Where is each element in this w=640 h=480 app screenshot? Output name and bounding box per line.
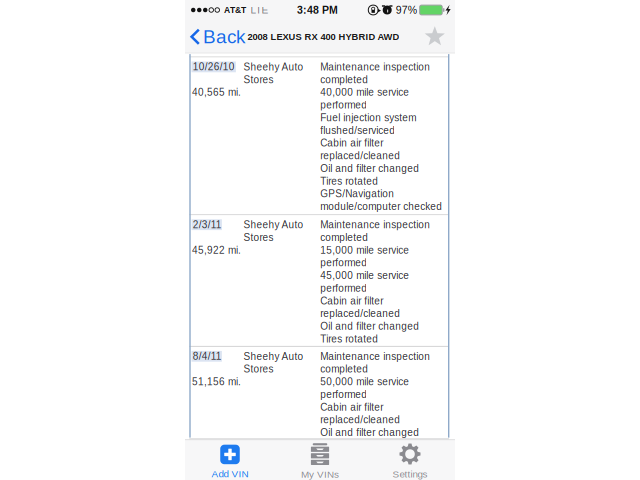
staticText: Tires rotated [320, 176, 378, 187]
staticText: 97% [396, 4, 417, 16]
staticText: Add VIN [211, 468, 248, 479]
staticText: 45,000 mile service [320, 270, 409, 281]
staticText: performed [320, 283, 367, 294]
staticText: 2/3/11 [193, 219, 221, 230]
staticText: completed [320, 74, 368, 85]
staticText: Oil and filter changed [320, 321, 419, 332]
staticText: Cabin air filter [320, 295, 383, 306]
staticText: LTE [250, 4, 268, 16]
staticText: My VINs [301, 469, 339, 480]
staticText: Stores [244, 363, 274, 375]
staticText: Tires rotated [320, 333, 378, 345]
button[interactable]: Add VIN [185, 439, 275, 480]
staticText: AT&T [224, 5, 246, 15]
staticText: Oil and filter changed [320, 427, 419, 438]
staticText: Back [203, 26, 245, 47]
staticText: Maintenance inspection [320, 351, 430, 362]
staticText: Maintenance inspection [320, 61, 430, 73]
staticText: Stores [244, 74, 274, 85]
staticText: 15,000 mile service [320, 245, 409, 256]
staticText: Oil and filter changed [320, 163, 419, 174]
staticText: replaced/cleaned [320, 308, 400, 319]
staticText: flushed/serviced [320, 125, 395, 136]
staticText: 40,565 mi. [192, 87, 241, 98]
staticText: 8/4/11 [193, 351, 221, 362]
staticText: performed [320, 389, 367, 400]
staticText: GPS/Navigation [320, 188, 394, 199]
staticText: replaced/cleaned [320, 150, 400, 161]
staticText: completed [320, 232, 368, 243]
staticText: Stores [244, 232, 274, 243]
staticText: 3:48 PM [297, 4, 338, 16]
button[interactable]: Settings [365, 439, 455, 480]
staticText: Cabin air filter [320, 402, 383, 413]
staticText: Settings [392, 468, 427, 479]
staticText: Sheehy Auto [244, 219, 304, 230]
staticText: Sheehy Auto [244, 61, 304, 73]
staticText: 2008 LEXUS RX 400 HYBRID AWD [247, 31, 399, 42]
staticText: 10/26/10 [193, 61, 235, 72]
staticText: Maintenance inspection [320, 219, 430, 230]
staticText: 50,000 mile service [320, 376, 409, 387]
staticText: 45,922 mi. [192, 245, 241, 256]
staticText: performed [320, 257, 367, 268]
staticText: Sheehy Auto [244, 351, 304, 362]
staticText: Cabin air filter [320, 137, 383, 149]
staticText: 51,156 mi. [192, 376, 241, 387]
staticText: Fuel injection system [320, 112, 416, 123]
staticText: replaced/cleaned [320, 414, 400, 425]
button[interactable]: Back [185, 20, 247, 53]
staticText: module/computer checked [320, 201, 442, 212]
button[interactable]: My VINs [275, 439, 365, 480]
staticText: 40,000 mile service [320, 87, 409, 98]
staticText: completed [320, 363, 368, 375]
staticText: performed [320, 99, 367, 111]
button[interactable]: Favorite [424, 20, 455, 53]
